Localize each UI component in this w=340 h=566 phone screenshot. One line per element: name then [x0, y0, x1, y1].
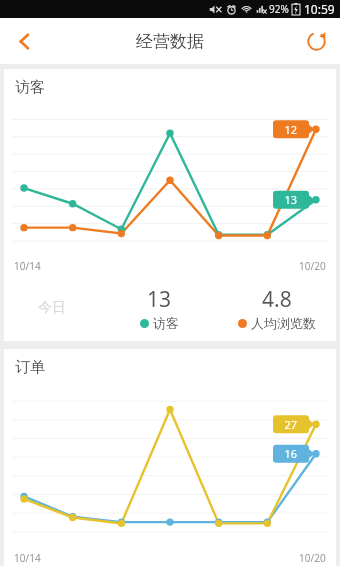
staticText: 今日	[38, 299, 66, 317]
staticText: 订单	[15, 358, 45, 377]
staticText: 10:59	[304, 1, 335, 17]
staticText: 经营数据	[136, 31, 204, 52]
staticText: 10/14	[14, 259, 41, 273]
staticText: 访客	[153, 315, 179, 331]
staticText: 10/20	[299, 259, 326, 273]
staticText: 92%	[269, 2, 289, 16]
button[interactable]: Refresh	[292, 18, 340, 64]
staticText: 10/20	[299, 551, 326, 565]
staticText: 10/14	[14, 551, 41, 565]
staticText: 访客	[15, 78, 45, 97]
staticText: 人均浏览数	[251, 315, 316, 331]
staticText: 4.8	[262, 285, 292, 314]
staticText: 13	[147, 285, 172, 314]
button[interactable]: Back	[0, 18, 48, 64]
